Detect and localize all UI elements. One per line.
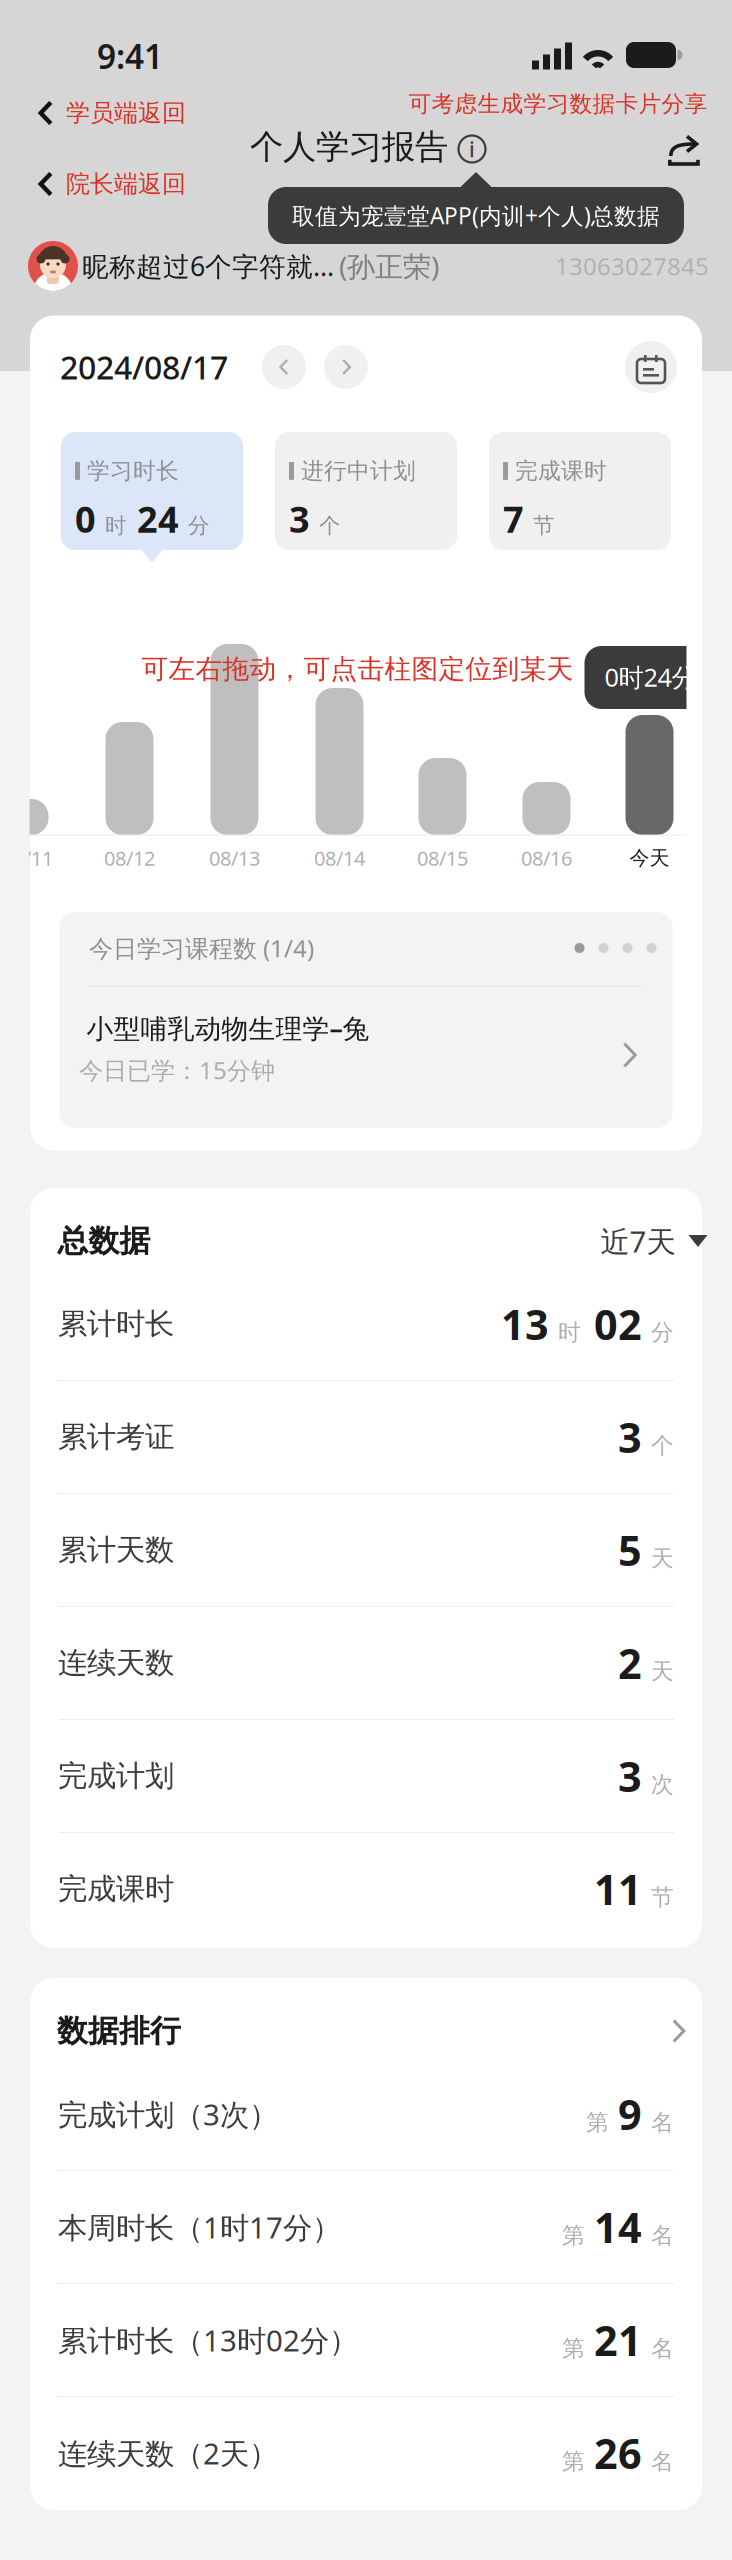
- staticText: 时: [105, 513, 126, 539]
- staticText: 分: [188, 513, 209, 539]
- staticText: 13: [501, 1297, 549, 1351]
- staticText: 取值为宠壹堂APP(内训+个人)总数据: [292, 200, 660, 230]
- staticText: 天: [651, 1545, 674, 1572]
- staticText: 院长端返回: [66, 169, 186, 199]
- staticText: 昵称超过6个字符就...: [82, 248, 334, 284]
- button[interactable]: 前一天: [262, 345, 306, 389]
- button[interactable]: 进行中计划: [275, 432, 457, 550]
- button[interactable]: 分享: [655, 122, 713, 178]
- staticText: 0时24分: [604, 660, 696, 694]
- staticText: 2024/08/17: [60, 346, 228, 388]
- staticText: 7: [503, 495, 524, 543]
- staticText: 近7天: [600, 1221, 675, 1260]
- staticText: 24: [137, 495, 179, 543]
- staticText: 学员端返回: [66, 98, 186, 128]
- staticText: 第: [562, 2448, 585, 2475]
- staticText: 累计时长（13时02分）: [58, 2320, 358, 2359]
- staticText: 08/11: [2, 845, 53, 871]
- staticText: 连续天数（2天）: [58, 2433, 278, 2472]
- staticText: 节: [651, 1884, 674, 1911]
- staticText: 08/15: [417, 845, 468, 871]
- staticText: 9:41: [97, 34, 163, 78]
- button[interactable]: 小型哺乳动物生理学–兔: [59, 986, 672, 1128]
- staticText: (孙正荣): [339, 247, 439, 285]
- staticText: 02: [594, 1297, 642, 1351]
- staticText: 完成课时: [58, 1871, 174, 1907]
- staticText: 08/12: [104, 845, 155, 871]
- staticText: 今日已学：15分钟: [79, 1054, 275, 1086]
- staticText: 学习时长: [87, 457, 179, 485]
- staticText: 分: [651, 1319, 674, 1346]
- staticText: i: [469, 135, 475, 163]
- staticText: 累计考证: [58, 1419, 174, 1455]
- staticText: 第: [562, 2222, 585, 2249]
- staticText: 14: [594, 2200, 642, 2254]
- staticText: 名: [651, 2222, 674, 2249]
- button[interactable]: 近7天: [592, 1213, 715, 1268]
- staticText: 个: [651, 1432, 674, 1459]
- staticText: 累计天数: [58, 1532, 174, 1568]
- staticText: 3: [618, 1749, 642, 1803]
- staticText: 个: [319, 513, 340, 539]
- button[interactable]: 院长端返回: [34, 163, 186, 205]
- staticText: 名: [651, 2109, 674, 2136]
- staticText: 2: [618, 1636, 642, 1690]
- staticText: 数据排行: [57, 2012, 181, 2050]
- staticText: 个人学习报告: [250, 126, 448, 167]
- staticText: 21: [594, 2313, 642, 2367]
- staticText: 时: [558, 1319, 581, 1346]
- staticText: 08/13: [209, 845, 260, 871]
- staticText: 可左右拖动，可点击柱图定位到某天: [141, 653, 573, 685]
- staticText: 08/14: [314, 845, 365, 871]
- staticText: 3: [618, 1410, 642, 1464]
- staticText: 今天: [629, 846, 669, 870]
- staticText: 总数据: [57, 1222, 150, 1260]
- staticText: 完成课时: [515, 457, 607, 485]
- staticText: 可考虑生成学习数据卡片分享: [408, 90, 707, 118]
- button[interactable]: 学习时长: [61, 432, 243, 550]
- button[interactable]: 日历: [625, 341, 677, 393]
- staticText: 完成计划: [58, 1758, 174, 1794]
- staticText: 13063027845: [555, 250, 709, 282]
- button[interactable]: 完成课时: [489, 432, 671, 550]
- staticText: 累计时长: [58, 1306, 174, 1342]
- staticText: 26: [594, 2426, 642, 2480]
- staticText: 完成计划（3次）: [58, 2094, 278, 2133]
- staticText: 今日学习课程数 (1/4): [89, 932, 314, 964]
- staticText: 第: [586, 2109, 609, 2136]
- staticText: 小型哺乳动物生理学–兔: [86, 1010, 369, 1046]
- staticText: 连续天数: [58, 1645, 174, 1681]
- staticText: 5: [618, 1523, 642, 1577]
- staticText: 08/16: [521, 845, 572, 871]
- staticText: 9: [618, 2087, 642, 2141]
- button[interactable]: 数据排行: [30, 1978, 702, 2058]
- button[interactable]: 后一天: [324, 345, 368, 389]
- staticText: 0: [75, 495, 96, 543]
- staticText: 3: [289, 495, 310, 543]
- staticText: 节: [533, 513, 554, 539]
- staticText: 第: [562, 2335, 585, 2362]
- staticText: 进行中计划: [301, 457, 416, 485]
- staticText: 次: [651, 1771, 674, 1798]
- staticText: 名: [651, 2448, 674, 2475]
- staticText: 11: [594, 1862, 642, 1916]
- staticText: 天: [651, 1658, 674, 1685]
- staticText: 本周时长（1时17分）: [58, 2207, 341, 2246]
- staticText: 名: [651, 2335, 674, 2362]
- button[interactable]: 学员端返回: [34, 92, 186, 134]
